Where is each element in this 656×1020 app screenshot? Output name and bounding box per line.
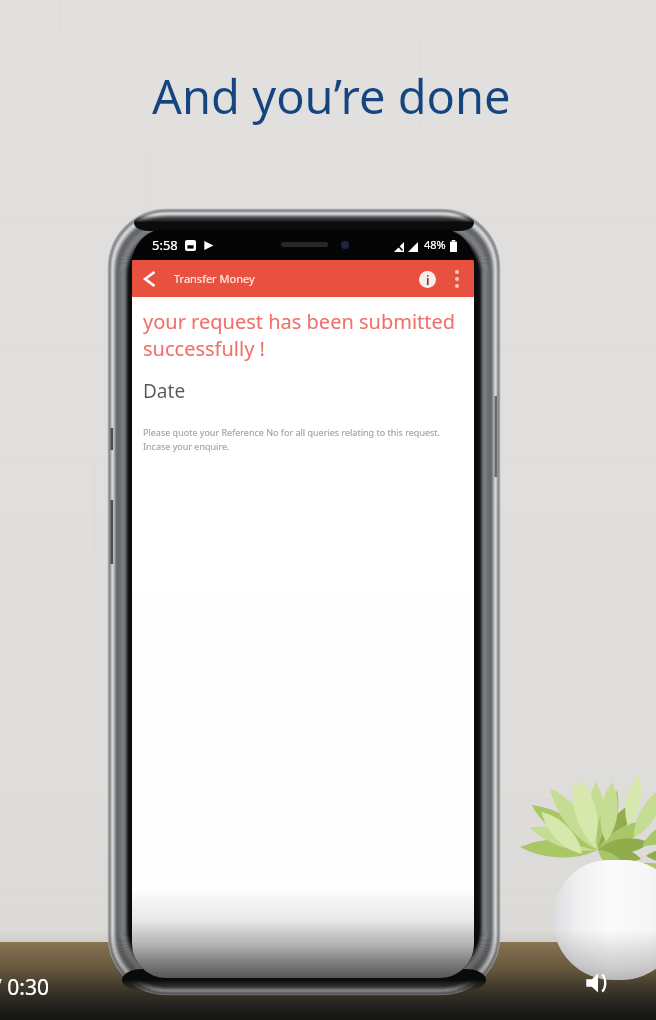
staticText: Please quote your Reference No for all q… [143,426,466,453]
staticText: And you’re done [152,64,511,128]
button[interactable]: Unmute [578,963,618,1003]
staticText: your request has been submitted successf… [143,308,466,362]
button[interactable]: Back [132,260,168,297]
staticText: 5:58 [152,236,178,254]
staticText: Date [143,378,186,404]
button[interactable]: Info [413,265,441,293]
staticText: i [426,272,430,288]
staticText: / 0:30 [0,973,49,1002]
staticText: Transfer Money [174,271,255,286]
other: Video time 0:30 [0,973,49,1002]
staticText: 48% [424,237,446,252]
button[interactable]: More options [443,265,471,293]
